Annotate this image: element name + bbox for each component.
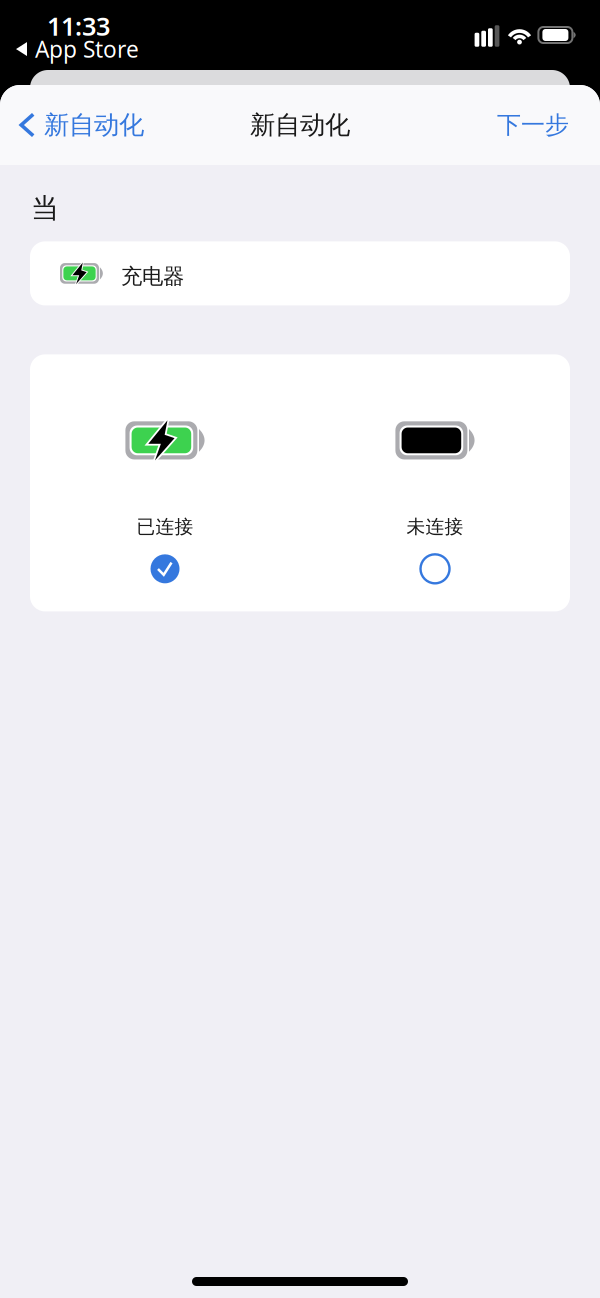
button[interactable]: 下一步 bbox=[485, 85, 600, 165]
staticText: 已连接 bbox=[136, 515, 193, 538]
staticText: 当 bbox=[31, 191, 59, 225]
button[interactable]: 充电器 bbox=[30, 241, 570, 305]
button[interactable]: 新自动化 bbox=[0, 85, 156, 165]
button[interactable]: 已连接 bbox=[30, 354, 300, 611]
staticText: 新自动化 bbox=[250, 109, 350, 140]
staticText: 未连接 bbox=[406, 515, 463, 538]
staticText: 11:33 bbox=[47, 9, 110, 43]
staticText: 新自动化 bbox=[44, 109, 144, 140]
staticText: App Store bbox=[35, 34, 139, 64]
button[interactable]: 未连接 bbox=[300, 354, 570, 611]
staticText: 下一步 bbox=[497, 110, 569, 140]
staticText: 充电器 bbox=[121, 263, 184, 289]
